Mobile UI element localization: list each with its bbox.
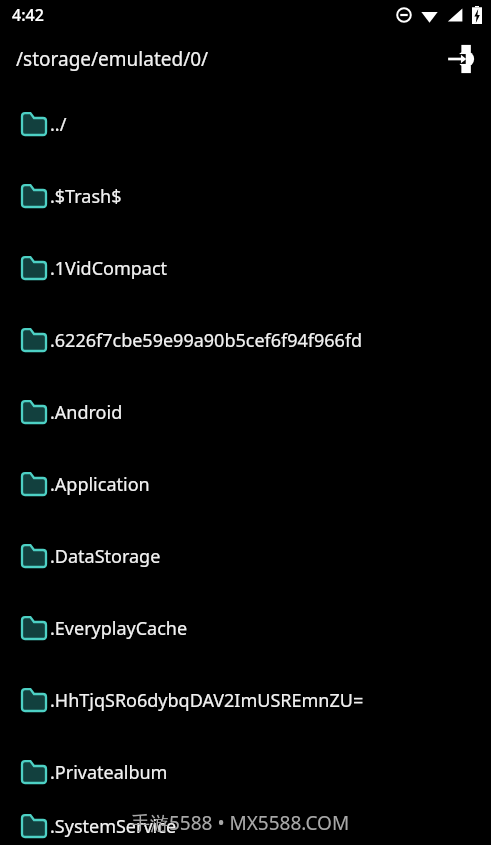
staticText: .$Trash$ <box>50 184 122 209</box>
button[interactable]: .DataStorage <box>0 520 491 592</box>
staticText: .SystemService <box>50 814 177 839</box>
button[interactable]: .HhTjqSRo6dybqDAV2ImUSREmnZU= <box>0 664 491 736</box>
button[interactable]: ../ <box>0 88 491 160</box>
button[interactable]: .EveryplayCache <box>0 592 491 664</box>
staticText: .6226f7cbe59e99a90b5cef6f94f966fd <box>50 328 363 353</box>
button[interactable]: .6226f7cbe59e99a90b5cef6f94f966fd <box>0 304 491 376</box>
staticText: 4:42 <box>12 4 44 26</box>
button[interactable]: .SystemService <box>0 808 491 845</box>
button[interactable]: .Privatealbum <box>0 736 491 808</box>
staticText: .Application <box>50 472 150 497</box>
button[interactable]: .Android <box>0 376 491 448</box>
button[interactable]: .$Trash$ <box>0 160 491 232</box>
button[interactable]: Send to watch <box>440 38 482 80</box>
button[interactable]: .1VidCompact <box>0 232 491 304</box>
staticText: .EveryplayCache <box>50 616 188 641</box>
staticText: 手游5588 • MX5588.COM <box>131 810 350 836</box>
staticText: .1VidCompact <box>50 256 168 281</box>
button[interactable]: .Application <box>0 448 491 520</box>
staticText: .Android <box>50 400 123 425</box>
staticText: .Privatealbum <box>50 760 168 785</box>
staticText: ../ <box>50 112 67 137</box>
staticText: .HhTjqSRo6dybqDAV2ImUSREmnZU= <box>50 688 364 713</box>
staticText: .DataStorage <box>50 544 161 569</box>
staticText: /storage/emulated/0/ <box>16 46 209 72</box>
